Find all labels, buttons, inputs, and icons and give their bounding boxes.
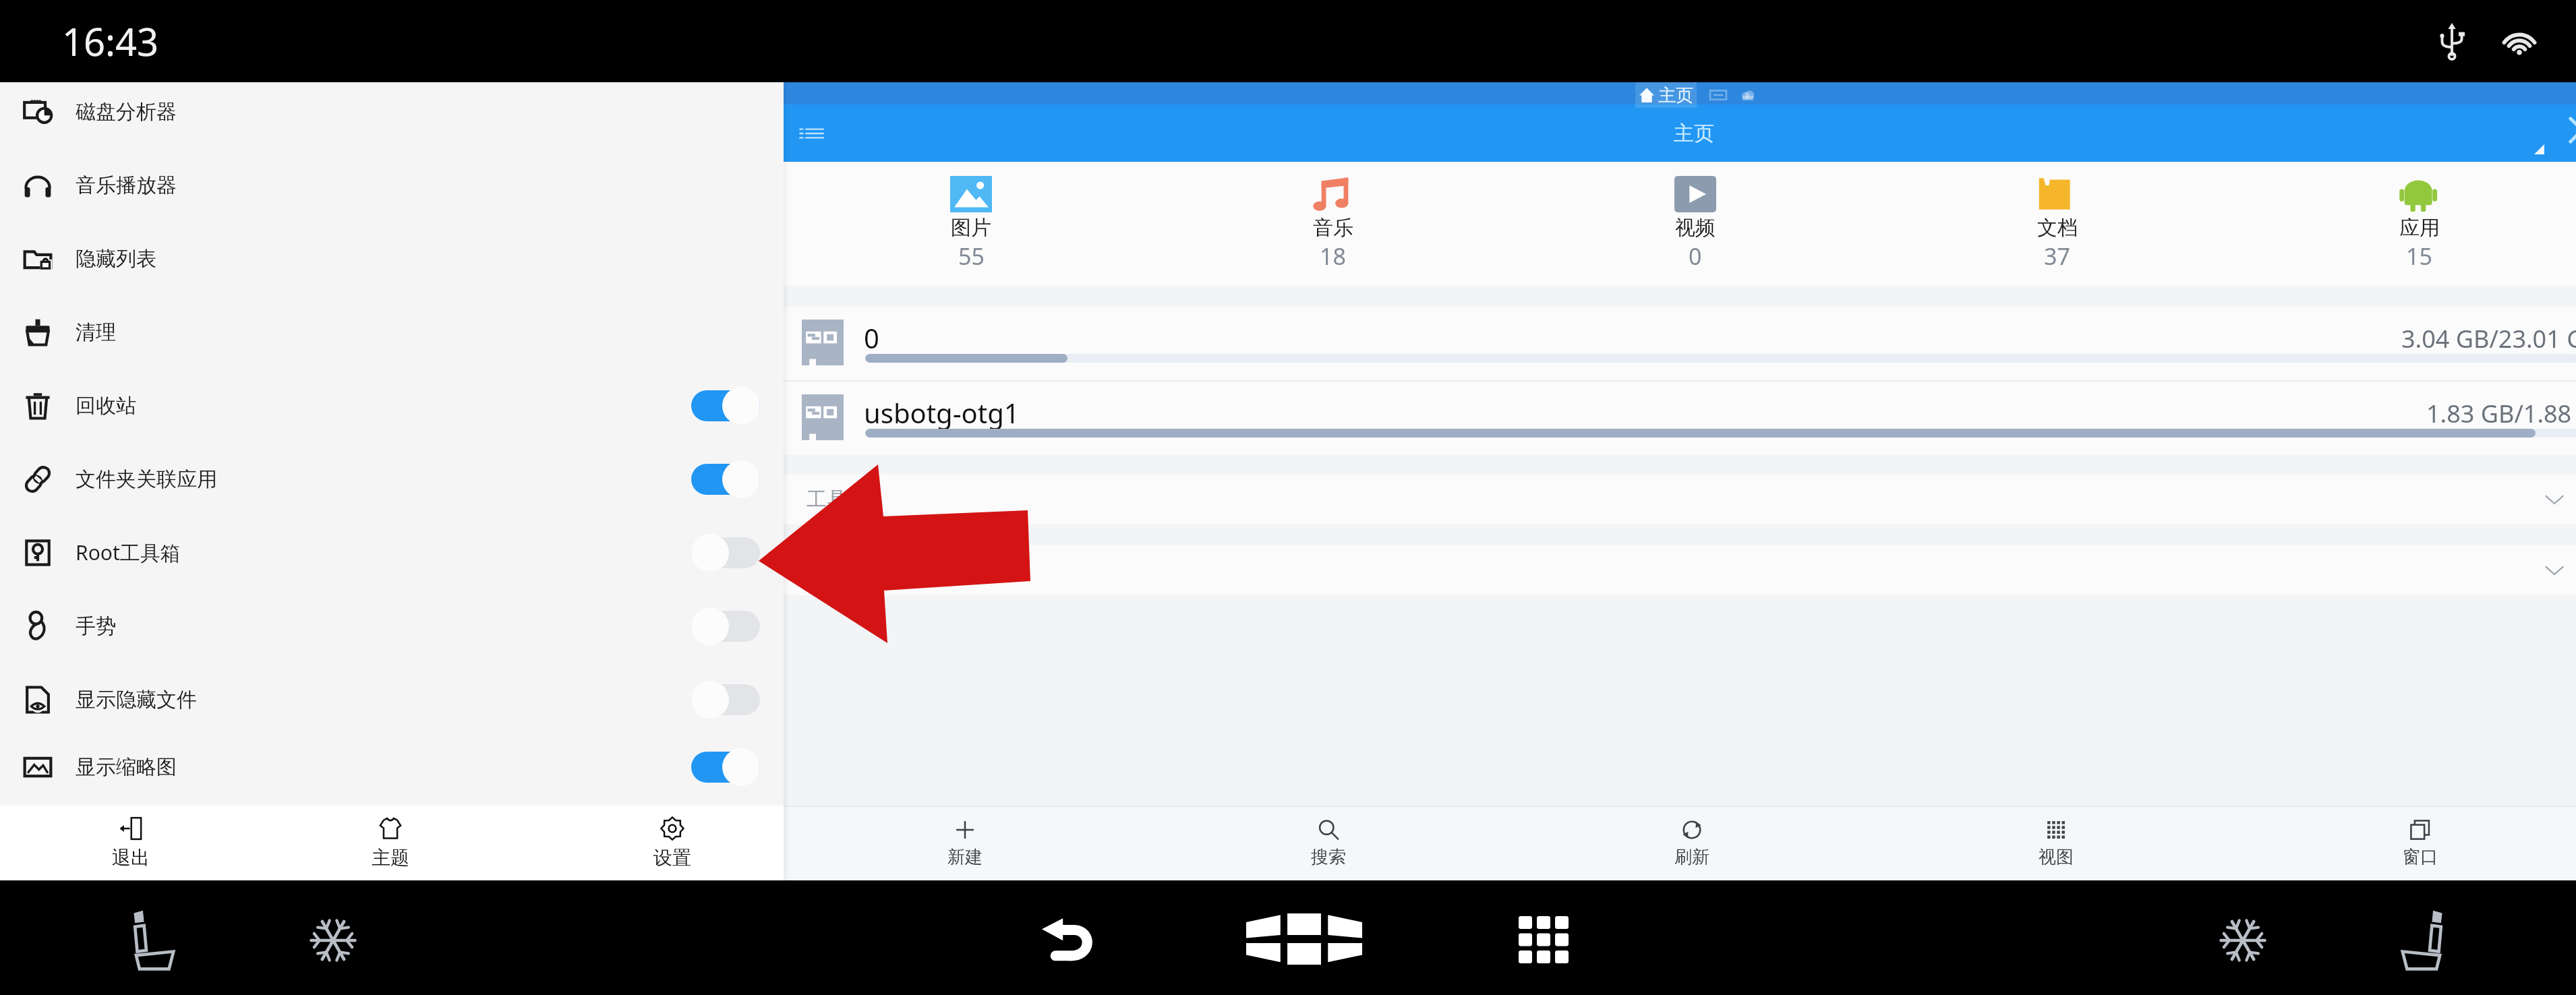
button[interactable]: 清理 xyxy=(0,295,784,369)
staticText: 0 xyxy=(1689,241,1702,272)
button[interactable]: Passenger seat xyxy=(2398,909,2455,971)
staticText: 视频 xyxy=(1675,215,1716,241)
staticText: 设置 xyxy=(653,846,691,870)
staticText: usbotg-otg1 xyxy=(864,394,1020,431)
staticText: 工具 xyxy=(807,487,847,512)
button[interactable]: 搜索 xyxy=(1146,806,1510,880)
button[interactable]: 设置 xyxy=(605,806,740,880)
staticText: 主页 xyxy=(1674,121,1714,146)
button[interactable]: 主题 xyxy=(323,806,458,880)
staticText: 图片 xyxy=(951,215,991,241)
staticText: 55 xyxy=(958,241,985,272)
button[interactable]: 文件夹关联应用 xyxy=(0,442,784,516)
button[interactable]: 新建 xyxy=(783,806,1146,880)
button[interactable]: Root工具箱 xyxy=(0,516,784,589)
button[interactable]: Expand xyxy=(784,545,2576,595)
button[interactable]: 窗口 xyxy=(2238,806,2576,880)
staticText: 显示隐藏文件 xyxy=(76,687,197,713)
button[interactable]: 主页 xyxy=(1639,82,1693,108)
staticText: 回收站 xyxy=(76,393,136,419)
staticText: 文档 xyxy=(2037,215,2078,241)
button[interactable]: 音乐 xyxy=(1152,162,1514,286)
button[interactable]: 刷新 xyxy=(1510,806,1874,880)
staticText: 隐藏列表 xyxy=(76,246,156,272)
button[interactable]: 显示缩略图 xyxy=(0,736,784,798)
button[interactable]: 图片 xyxy=(790,162,1152,286)
button[interactable]: usbotg-otg1 xyxy=(784,382,2576,455)
staticText: 窗口 xyxy=(2403,846,2438,868)
staticText: 15 xyxy=(2406,241,2432,272)
staticText: 18 xyxy=(1320,241,1346,272)
button[interactable]: Menu xyxy=(798,123,825,144)
button[interactable] xyxy=(691,534,760,572)
button[interactable] xyxy=(691,460,760,498)
button[interactable]: 音乐播放器 xyxy=(0,148,784,222)
button[interactable]: 视图 xyxy=(1874,806,2238,880)
staticText: 音乐 xyxy=(1313,215,1353,241)
staticText: 视图 xyxy=(2039,846,2074,868)
staticText: 主题 xyxy=(372,846,409,870)
staticText: 显示缩略图 xyxy=(76,754,177,780)
staticText: 3.04 GB/23.01 GB xyxy=(2401,322,2576,355)
staticText: 主页 xyxy=(1658,84,1693,107)
staticText: 搜索 xyxy=(1311,846,1346,868)
staticText: 退出 xyxy=(112,846,150,870)
staticText: 应用 xyxy=(2399,215,2440,241)
staticText: 手势 xyxy=(76,613,116,639)
staticText: 磁盘分析器 xyxy=(76,99,177,125)
staticText: 清理 xyxy=(76,320,116,345)
button[interactable]: AC left xyxy=(309,916,357,965)
button[interactable]: Driver seat xyxy=(121,909,178,971)
staticText: 音乐播放器 xyxy=(76,173,177,198)
staticText: 1.83 GB/1.88 GB xyxy=(2426,397,2576,430)
button[interactable]: Home xyxy=(1246,913,1362,965)
button[interactable]: 回收站 xyxy=(0,369,784,442)
button[interactable]: 磁盘分析器 xyxy=(0,75,784,148)
staticText: 16:43 xyxy=(62,16,159,67)
button[interactable]: 0 xyxy=(784,307,2576,380)
button[interactable]: Expand xyxy=(2544,564,2565,577)
button[interactable] xyxy=(691,748,760,786)
button[interactable]: Apps xyxy=(1519,916,1569,963)
other: Cloud xyxy=(1740,88,1755,102)
button[interactable]: 工具 xyxy=(784,475,2576,524)
button[interactable] xyxy=(691,681,760,719)
staticText: 文件夹关联应用 xyxy=(76,466,217,492)
button[interactable] xyxy=(691,607,760,645)
button[interactable]: Close xyxy=(2564,112,2576,148)
button[interactable]: Back xyxy=(1042,917,1094,962)
button[interactable]: Expand xyxy=(2544,493,2565,506)
button[interactable]: 视频 xyxy=(1514,162,1876,286)
button[interactable]: AC right xyxy=(2219,916,2267,965)
other: New tab xyxy=(1710,88,1726,102)
staticText: 0 xyxy=(864,320,879,356)
staticText: 刷新 xyxy=(1674,846,1709,868)
button[interactable]: 文档 xyxy=(1876,162,2238,286)
staticText: 新建 xyxy=(947,846,983,868)
button[interactable]: 隐藏列表 xyxy=(0,222,784,295)
button[interactable]: 显示隐藏文件 xyxy=(0,663,784,736)
staticText: Root工具箱 xyxy=(76,539,181,566)
button[interactable] xyxy=(691,387,760,425)
button[interactable]: 应用 xyxy=(2238,162,2576,286)
staticText: 37 xyxy=(2044,241,2070,272)
button[interactable]: 手势 xyxy=(0,589,784,663)
button[interactable]: 退出 xyxy=(63,806,198,880)
